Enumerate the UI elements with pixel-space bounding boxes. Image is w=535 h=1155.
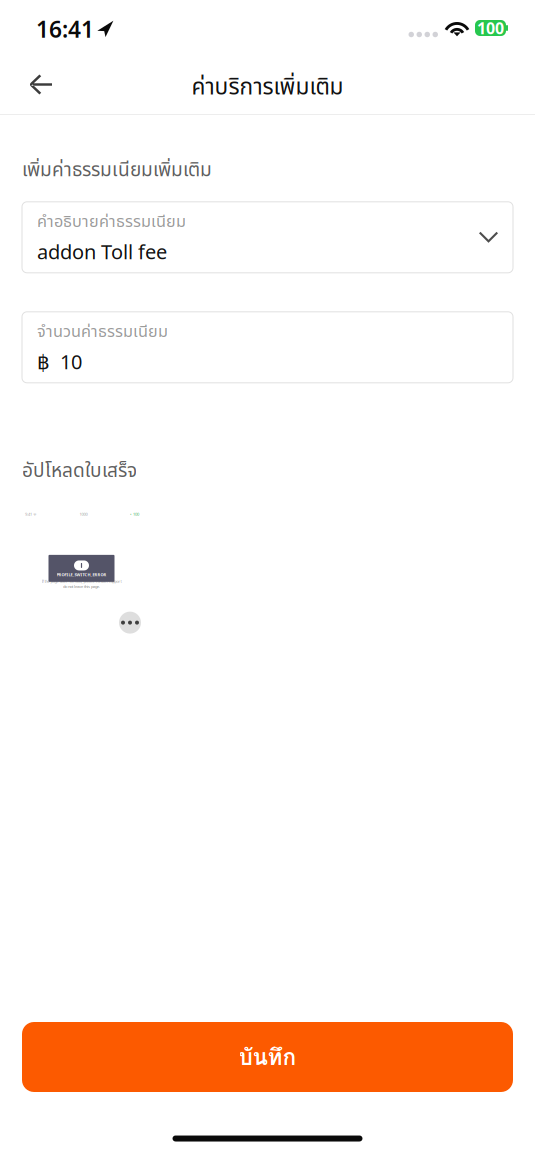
staticText: If the page does not load, please contac…	[41, 578, 121, 584]
button[interactable]: More options	[117, 610, 143, 636]
staticText: 16:41	[36, 14, 94, 44]
staticText: เพิ่มค่าธรรมเนียมเพิ่มเติม	[22, 156, 212, 185]
button[interactable]: คำอธิบายค่าธรรมเนียม	[22, 202, 513, 273]
staticText: PROFILE_SWITCH_ERROR	[56, 572, 106, 577]
staticText: ฿ 10	[37, 348, 82, 375]
staticText: จำนวนค่าธรรมเนียม	[37, 320, 168, 344]
staticText: บันทึก	[238, 1039, 296, 1075]
staticText: 1000	[79, 511, 87, 517]
button[interactable]: Back	[18, 62, 64, 108]
staticText: do not leave this page.	[63, 584, 100, 589]
staticText: คำอธิบายค่าธรรมเนียม	[37, 210, 186, 234]
staticText: • 100	[130, 511, 139, 517]
button[interactable]: จำนวนค่าธรรมเนียม	[22, 312, 513, 383]
staticText: addon Toll fee	[37, 238, 167, 265]
staticText: 100	[477, 17, 504, 39]
staticText: อัปโหลดใบเสร็จ	[22, 457, 137, 486]
staticText: 9:41 ᯤ	[25, 511, 37, 517]
staticText: ค่าบริการเพิ่มเติม	[191, 70, 343, 105]
button[interactable]: บันทึก	[22, 1022, 513, 1092]
